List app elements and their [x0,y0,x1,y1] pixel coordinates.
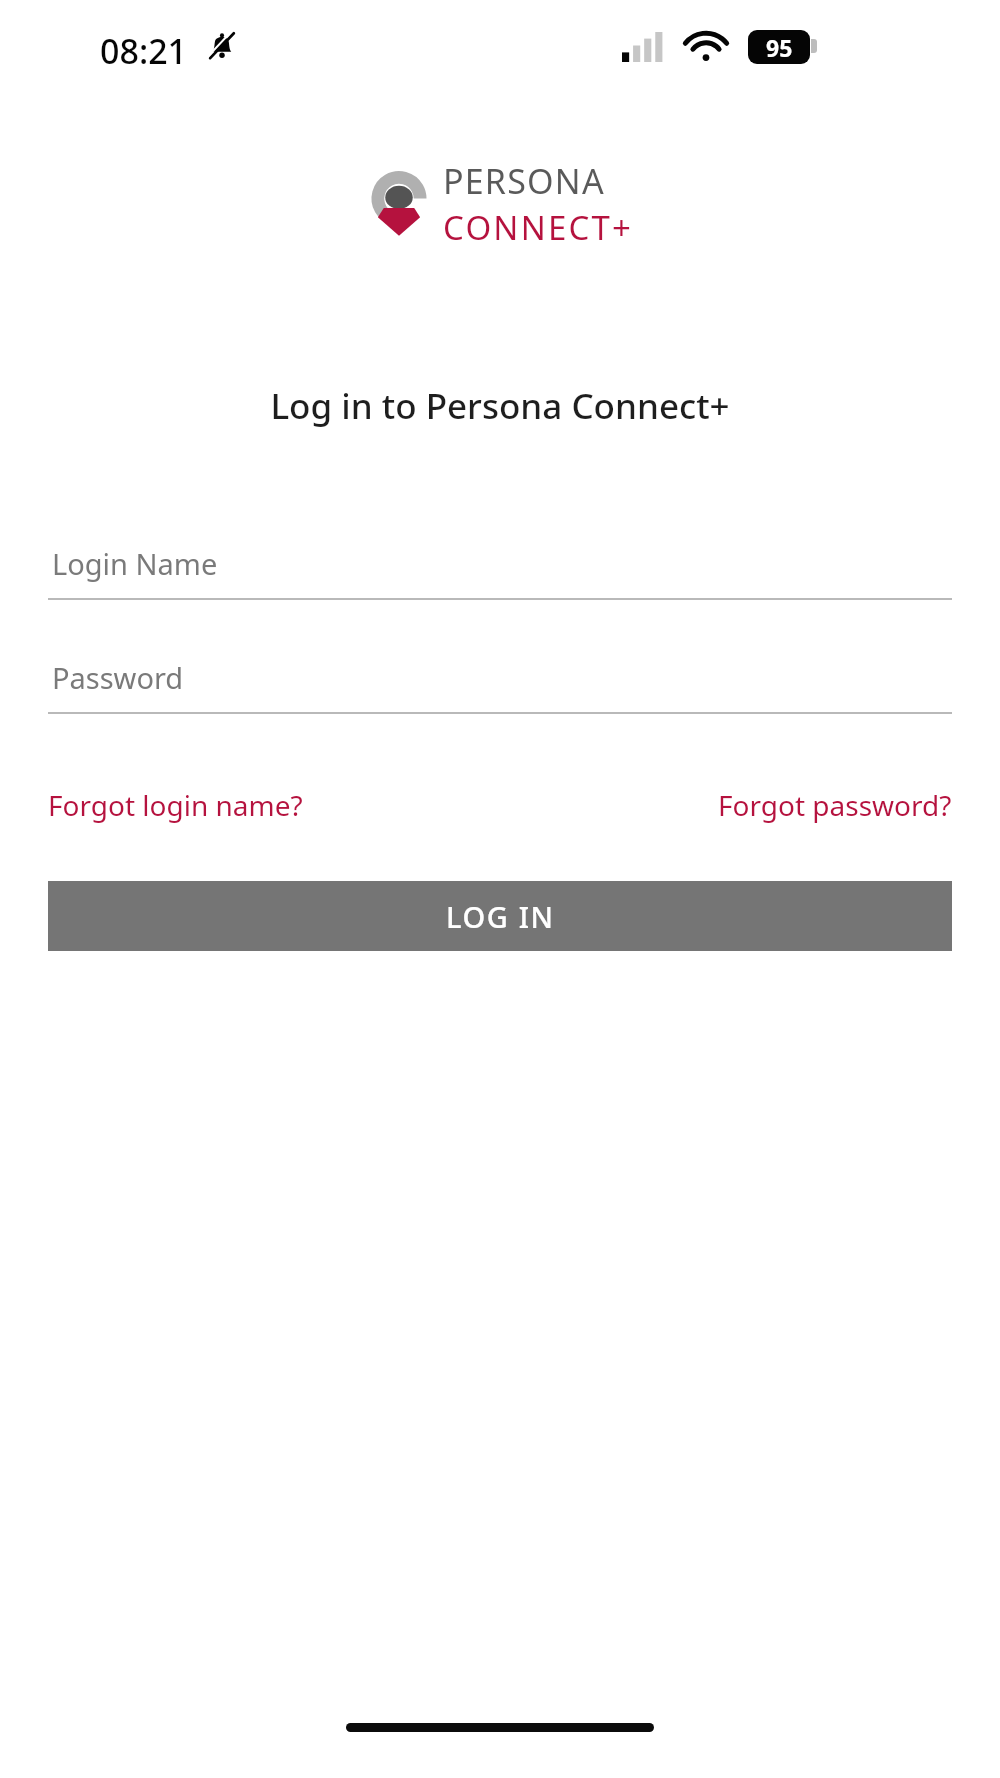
other: Wi-Fi [686,30,726,62]
button[interactable]: Forgot password? [718,786,952,824]
button[interactable]: Login Name [48,544,952,600]
staticText: 95 [766,32,793,63]
staticText: CONNECT+ [443,205,634,250]
staticText: 08:21 [100,28,188,74]
staticText: LOG IN [446,897,555,936]
staticText: Forgot login name? [48,786,303,824]
staticText: Login Name [52,544,218,583]
staticText: Log in to Persona Connect+ [270,382,730,430]
staticText: Forgot password? [718,786,952,824]
other: Silent mode [206,30,238,62]
staticText: PERSONA [443,158,605,204]
staticText: Password [52,658,184,697]
button[interactable]: Forgot login name? [48,786,303,824]
button[interactable]: LOG IN [48,881,952,951]
other: Cellular signal [622,32,664,62]
button[interactable]: Password [48,658,952,714]
